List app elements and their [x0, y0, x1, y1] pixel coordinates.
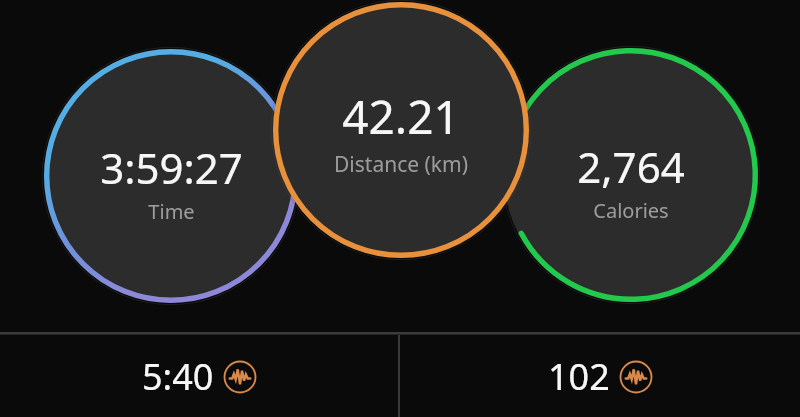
button[interactable]: Calories 2,764 [502, 46, 760, 304]
staticText: Time [148, 198, 195, 225]
staticText: 2,764 [577, 138, 685, 195]
button[interactable]: Average pace 5:40 [0, 335, 398, 417]
button[interactable]: Average cadence 102 [400, 335, 800, 417]
staticText: 42.21 [342, 85, 460, 148]
staticText: Calories [593, 197, 669, 224]
staticText: 102 [548, 352, 610, 401]
staticText: Distance (km) [334, 150, 468, 179]
button[interactable]: Distance 42.21 km [271, 0, 531, 260]
staticText: 3:59:27 [100, 139, 243, 196]
staticText: 5:40 [142, 352, 214, 401]
button[interactable]: Time 3:59:27 [42, 47, 300, 305]
